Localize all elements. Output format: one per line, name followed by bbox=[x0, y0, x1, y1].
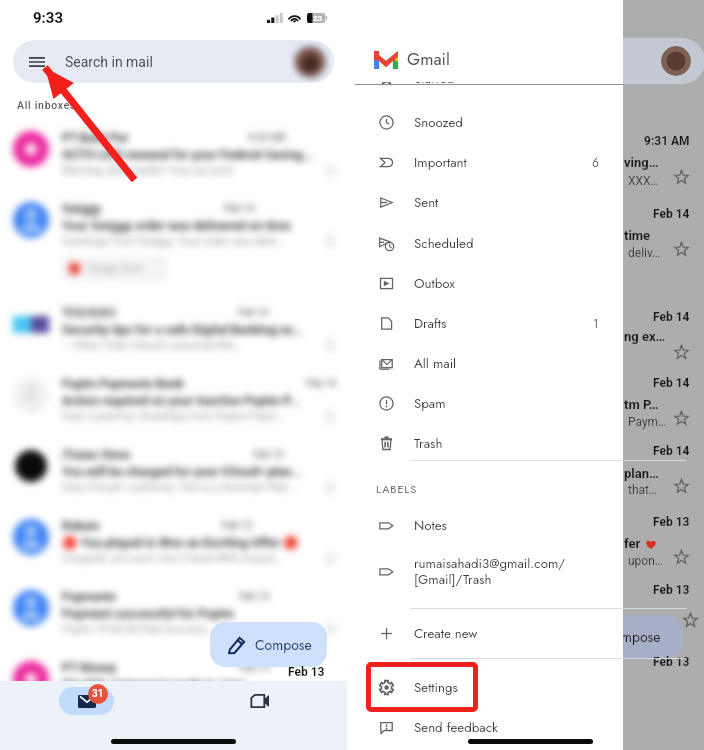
staticText: Feb 13 bbox=[239, 591, 270, 603]
staticText: LABELS bbox=[376, 481, 418, 497]
staticText: 1 bbox=[593, 315, 599, 332]
button[interactable]: Swiggy bbox=[0, 191, 347, 295]
button[interactable]: Gmail bbox=[374, 48, 450, 72]
staticText: Paym… bbox=[628, 415, 667, 429]
staticText: Important bbox=[414, 153, 592, 172]
staticText: Feb 14 bbox=[653, 207, 690, 221]
staticText: Paymento bbox=[62, 590, 117, 604]
staticText: Search in mail bbox=[65, 54, 153, 70]
staticText: Feb 14 bbox=[653, 310, 690, 324]
staticText: Rakam bbox=[62, 519, 100, 533]
staticText: tm P… bbox=[624, 397, 659, 412]
staticText: Send feedback bbox=[414, 718, 623, 737]
staticText: time bbox=[624, 228, 651, 243]
staticText: Paytm: ₹150.00 Paid Success... bbox=[62, 623, 318, 636]
staticText: Trash bbox=[414, 434, 623, 453]
button[interactable]: Send feedback bbox=[347, 709, 623, 745]
button[interactable]: Mail bbox=[59, 687, 114, 715]
button[interactable]: Account bbox=[290, 42, 330, 82]
button[interactable]: Starred bbox=[347, 60, 623, 96]
staticText: Payment successful for Paytm bbox=[62, 606, 234, 621]
button[interactable]: Sent bbox=[347, 184, 623, 220]
button[interactable]: mpose bbox=[561, 615, 683, 658]
staticText: TCS/ICICI bbox=[62, 306, 116, 320]
button[interactable]: Notes bbox=[347, 507, 623, 543]
staticText: All mail bbox=[414, 354, 623, 373]
staticText: Feb 14 bbox=[653, 444, 690, 458]
staticText: upon… bbox=[628, 554, 663, 568]
button[interactable]: Outbox bbox=[347, 265, 623, 301]
staticText: Warning, dear reader! Your account XXXXX… bbox=[62, 164, 318, 177]
staticText: Spam bbox=[414, 394, 623, 413]
staticText: OCTO LIFE renewal for your Federal Savin… bbox=[62, 147, 314, 162]
button[interactable]: Settings bbox=[347, 669, 623, 705]
staticText: Feb 13 bbox=[653, 583, 690, 597]
staticText: Scheduled bbox=[414, 234, 623, 253]
staticText: 23 bbox=[313, 14, 323, 23]
staticText: Settings bbox=[414, 678, 623, 697]
staticText: 31 bbox=[92, 688, 104, 700]
staticText: Swiggy bbox=[62, 202, 102, 216]
button[interactable]: Spam bbox=[347, 385, 623, 421]
staticText: Dear iCloud+ customer, This is a reminde… bbox=[62, 481, 318, 494]
staticText: ng ex… bbox=[624, 329, 666, 344]
staticText: Feb 13 bbox=[653, 655, 690, 669]
button[interactable]: TCS/ICICI bbox=[0, 295, 347, 366]
staticText: Starred bbox=[414, 69, 623, 88]
staticText: Feb 13 bbox=[239, 662, 270, 674]
staticText: Swiggy Deliv bbox=[87, 263, 143, 275]
staticText: ving… bbox=[624, 155, 659, 170]
button[interactable]: Create new bbox=[347, 615, 623, 651]
staticText: Snoozed bbox=[414, 113, 623, 132]
staticText: Compose bbox=[255, 635, 312, 655]
staticText: mpose bbox=[621, 627, 661, 647]
staticText: Dear Customer, Greetings from Paytm Paym… bbox=[62, 410, 318, 423]
staticText: 9:33 bbox=[33, 9, 64, 27]
button[interactable]: Drafts bbox=[347, 305, 623, 341]
staticText: iTunes Store bbox=[62, 448, 131, 462]
staticText: Your Swiggy order was delivered on time bbox=[62, 218, 291, 233]
staticText: Monthly statement ready to view bbox=[62, 677, 246, 692]
staticText: Drafts bbox=[414, 314, 593, 333]
staticText: Action required on your Inactive Paytm P… bbox=[62, 393, 300, 408]
staticText: Feb 14 bbox=[253, 449, 284, 461]
button[interactable]: Trash bbox=[347, 425, 623, 461]
button[interactable]: iTunes Store bbox=[0, 437, 347, 508]
staticText: Feb 13 bbox=[288, 665, 325, 679]
button[interactable]: Paymento bbox=[0, 579, 347, 650]
staticText: that… bbox=[628, 483, 658, 497]
staticText: Gmail bbox=[407, 47, 450, 71]
staticText: Create new bbox=[414, 624, 623, 643]
staticText: Security tips for a safe Digital Banking… bbox=[62, 322, 304, 337]
staticText: 9:31 AM bbox=[644, 134, 690, 148]
button[interactable]: All mail bbox=[347, 345, 623, 381]
button[interactable]: Scheduled bbox=[347, 225, 623, 261]
button[interactable]: Open navigation drawer bbox=[13, 40, 334, 83]
staticText: Notes bbox=[414, 516, 623, 535]
staticText: Congrats, you won! Your Friend WIN coupo… bbox=[62, 552, 318, 565]
button[interactable]: Open navigation drawer bbox=[17, 42, 57, 82]
button[interactable]: Meet bbox=[236, 683, 284, 719]
button[interactable]: Rakam bbox=[0, 508, 347, 579]
staticText: 6 bbox=[592, 154, 599, 171]
button[interactable]: PT Money bbox=[0, 650, 347, 721]
staticText: Feb 13 bbox=[222, 520, 253, 532]
staticText: XXX… bbox=[628, 174, 659, 188]
button[interactable]: Important bbox=[347, 144, 623, 180]
button[interactable]: PT Bank Per bbox=[0, 120, 347, 191]
staticText: Paytm Payments Bank bbox=[62, 377, 184, 391]
staticText: Your statement is available now... bbox=[62, 694, 318, 707]
staticText: 9:33 AM bbox=[248, 132, 286, 144]
button[interactable]: rumaisahadi3@gmail.com/ [Gmail]/Trash bbox=[347, 549, 623, 593]
staticText: All inboxes bbox=[17, 99, 77, 111]
staticText: Greetings from Swiggy. Your order was de… bbox=[62, 235, 318, 248]
button[interactable]: Compose bbox=[210, 622, 327, 667]
staticText: Feb 14 bbox=[653, 376, 690, 390]
staticText: 🔴 You played in Won an Exciting Offer 🔴 bbox=[62, 535, 299, 550]
staticText: plan… bbox=[624, 466, 659, 481]
staticText: Feb 14 bbox=[306, 378, 337, 390]
button[interactable]: Snoozed bbox=[347, 104, 623, 140]
button[interactable]: Paytm Payments Bank bbox=[0, 366, 347, 437]
staticText: Outbox bbox=[414, 274, 623, 293]
staticText: — Other: Dear Valued customer/Wa... bbox=[62, 339, 318, 352]
